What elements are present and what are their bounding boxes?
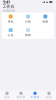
staticText: 9:41 [3,0,10,5]
staticText: 日报 [25,20,31,23]
button[interactable]: 工作台 [28,92,42,99]
staticText: 消息 [4,95,10,99]
staticText: 我的 [46,95,52,99]
button[interactable]: 日报 [19,14,37,23]
button[interactable]: 公告 [2,28,19,37]
staticText: 工作台 [3,4,15,9]
staticText: 报销 [25,33,31,37]
button[interactable]: 报销 [19,28,37,37]
button[interactable]: 消息 [0,92,14,99]
staticText: 工作台 [30,95,39,99]
button[interactable]: 我的 [42,92,56,99]
staticText: 常用应用 [3,9,15,12]
button[interactable]: 考勤 [37,14,54,23]
button[interactable]: 通讯录 [14,92,28,99]
button[interactable]: 审批 [2,14,19,23]
staticText: 公告 [8,33,14,37]
staticText: 通讯录 [16,95,25,99]
staticText: 考勤 [42,20,48,23]
staticText: 审批 [8,20,14,23]
